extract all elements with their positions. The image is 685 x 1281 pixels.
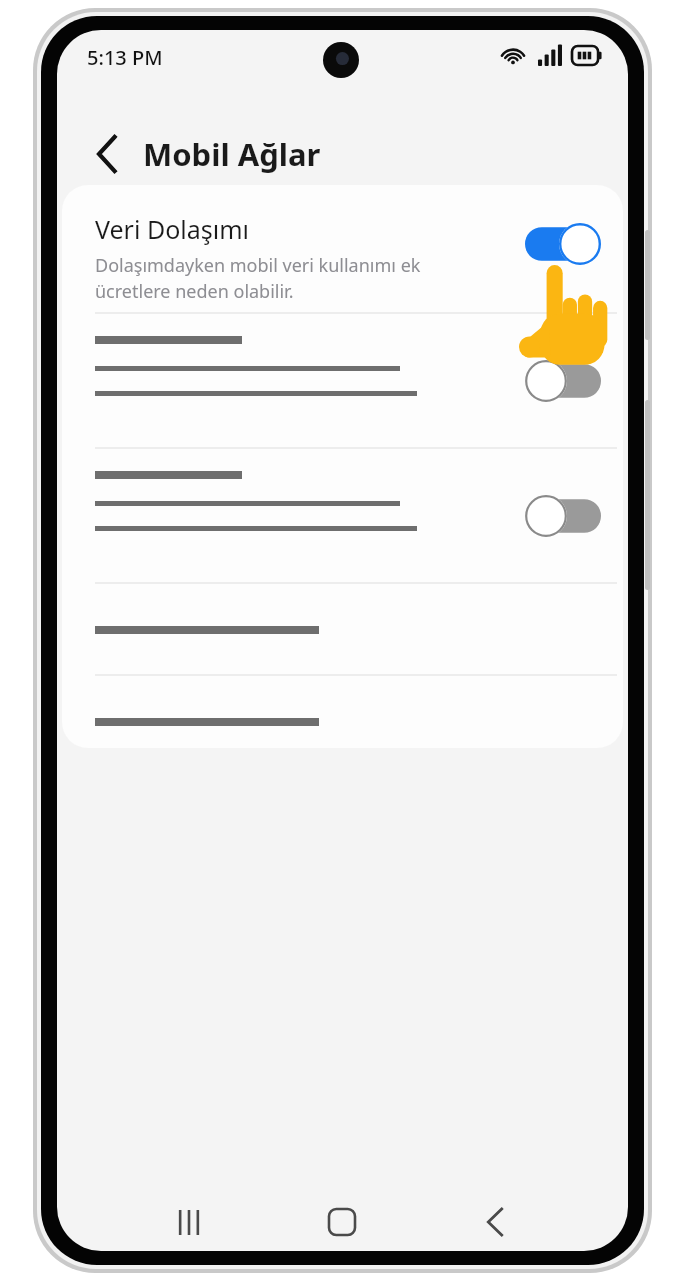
button[interactable]: Back bbox=[447, 1195, 543, 1249]
staticText: Dolaşımdayken mobil veri kullanımı ek üc… bbox=[95, 253, 445, 303]
button[interactable]: Home bbox=[294, 1195, 390, 1249]
button[interactable]: Back bbox=[81, 128, 133, 180]
button[interactable]: Veri Dolaşımı bbox=[62, 185, 623, 312]
staticText: 5:13 PM bbox=[87, 44, 163, 71]
button[interactable]: Setting toggle, off bbox=[62, 314, 623, 447]
button[interactable]: Setting toggle, off bbox=[525, 360, 601, 402]
button[interactable] bbox=[62, 584, 623, 674]
button[interactable]: Veri Dolaşımı toggle, on bbox=[525, 223, 601, 265]
button[interactable]: Setting toggle, off bbox=[525, 495, 601, 537]
staticText: Mobil Ağlar bbox=[143, 133, 321, 175]
button[interactable]: Setting toggle, off bbox=[62, 449, 623, 582]
staticText: Veri Dolaşımı bbox=[95, 212, 249, 246]
button[interactable]: Recent apps bbox=[141, 1195, 237, 1249]
button[interactable] bbox=[62, 676, 623, 748]
